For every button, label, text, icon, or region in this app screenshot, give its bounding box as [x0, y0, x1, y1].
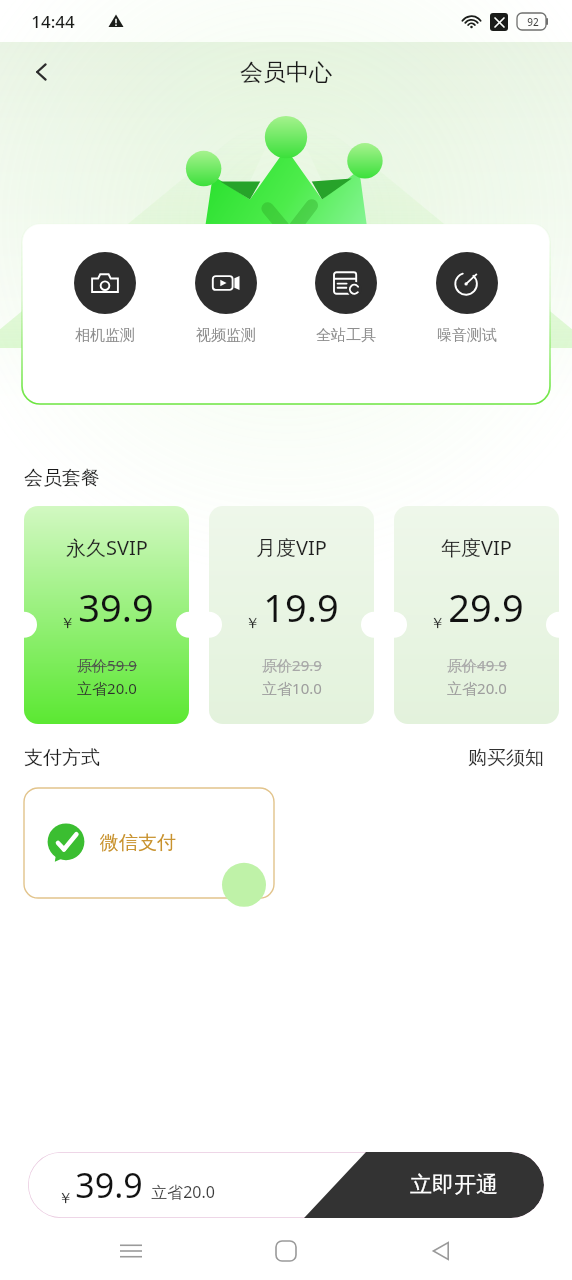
- staticText: 会员中心: [240, 58, 332, 87]
- staticText: 立省20.0: [447, 678, 507, 698]
- button[interactable]: 年度VIP: [394, 506, 559, 724]
- staticText: 年度VIP: [441, 534, 512, 561]
- staticText: ￥: [58, 1189, 73, 1208]
- staticText: 19.9: [263, 581, 339, 633]
- button[interactable]: 返回: [20, 50, 64, 94]
- button[interactable]: 购买须知: [464, 742, 548, 774]
- staticText: 立省10.0: [262, 678, 322, 698]
- staticText: ￥: [60, 614, 75, 633]
- button[interactable]: 相机监测: [68, 250, 142, 347]
- button[interactable]: Recent apps: [107, 1227, 155, 1275]
- staticText: 39.9: [78, 581, 154, 633]
- button[interactable]: 永久SVIP: [24, 506, 189, 724]
- staticText: 14:44: [31, 10, 75, 33]
- button[interactable]: 噪音测试: [430, 250, 504, 347]
- staticText: 立省20.0: [77, 678, 137, 698]
- staticText: 微信支付: [100, 831, 176, 855]
- staticText: ￥: [245, 614, 260, 633]
- staticText: 29.9: [448, 581, 524, 633]
- button[interactable]: 微信支付: [24, 788, 274, 898]
- button[interactable]: 视频监测: [189, 250, 263, 347]
- staticText: 立即开通: [410, 1171, 498, 1199]
- staticText: 永久SVIP: [66, 534, 148, 561]
- staticText: 92: [527, 15, 539, 29]
- staticText: 视频监测: [196, 326, 256, 345]
- staticText: 月度VIP: [256, 534, 327, 561]
- staticText: 立省20.0: [151, 1181, 215, 1203]
- staticText: 噪音测试: [437, 326, 497, 345]
- staticText: 原价49.9: [447, 655, 507, 675]
- staticText: 原价29.9: [262, 655, 322, 675]
- staticText: 全站工具: [316, 326, 376, 345]
- button[interactable]: ￥: [28, 1152, 544, 1218]
- button[interactable]: Back: [417, 1227, 465, 1275]
- staticText: 购买须知: [468, 746, 544, 770]
- staticText: 原价59.9: [77, 655, 137, 675]
- staticText: 相机监测: [75, 326, 135, 345]
- staticText: 支付方式: [24, 746, 100, 770]
- staticText: 39.9: [75, 1162, 143, 1208]
- button[interactable]: 月度VIP: [209, 506, 374, 724]
- button[interactable]: 全站工具: [309, 250, 383, 347]
- button[interactable]: Home: [262, 1227, 310, 1275]
- staticText: ￥: [430, 614, 445, 633]
- staticText: 会员套餐: [24, 466, 100, 490]
